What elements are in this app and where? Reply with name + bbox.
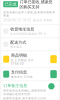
staticText: 您的包裹已由本人签收,如有疑问请联系客服 [3, 10, 55, 17]
staticText: 北京市朝阳区建国路 88 号 [10, 32, 46, 35]
button[interactable]: 商品明细 [1, 51, 59, 67]
staticText: 2024-06-12 14:32 配送员 李师傅 [3, 18, 52, 22]
staticText: 顺丰速运 [10, 45, 22, 48]
staticText: 如需售后服务,请于签收后七日内发起申请。 [3, 96, 46, 100]
staticText: 配送方式 [10, 40, 26, 45]
staticText: 共 2 件商品 合计 ¥168.00 [11, 58, 34, 65]
staticText: 订单已签收,感谢您的购买支持 [20, 0, 53, 9]
button[interactable]: 支付信息 [1, 68, 59, 80]
staticText: 支付信息 [11, 70, 27, 75]
staticText: 微信支付 已付款 [11, 75, 33, 78]
staticText: 请在收货后及时确认,逾期系统将自动确认收货并结算。 [3, 89, 46, 96]
button[interactable]: 收货地址信息 [1, 25, 59, 37]
staticText: 收货地址信息 [10, 27, 34, 32]
button[interactable]: 配送方式 [1, 38, 59, 50]
staticText: 已完成 [5, 2, 17, 7]
staticText: 商品明细 [11, 53, 27, 58]
staticText: 订单备注信息 [3, 83, 27, 88]
